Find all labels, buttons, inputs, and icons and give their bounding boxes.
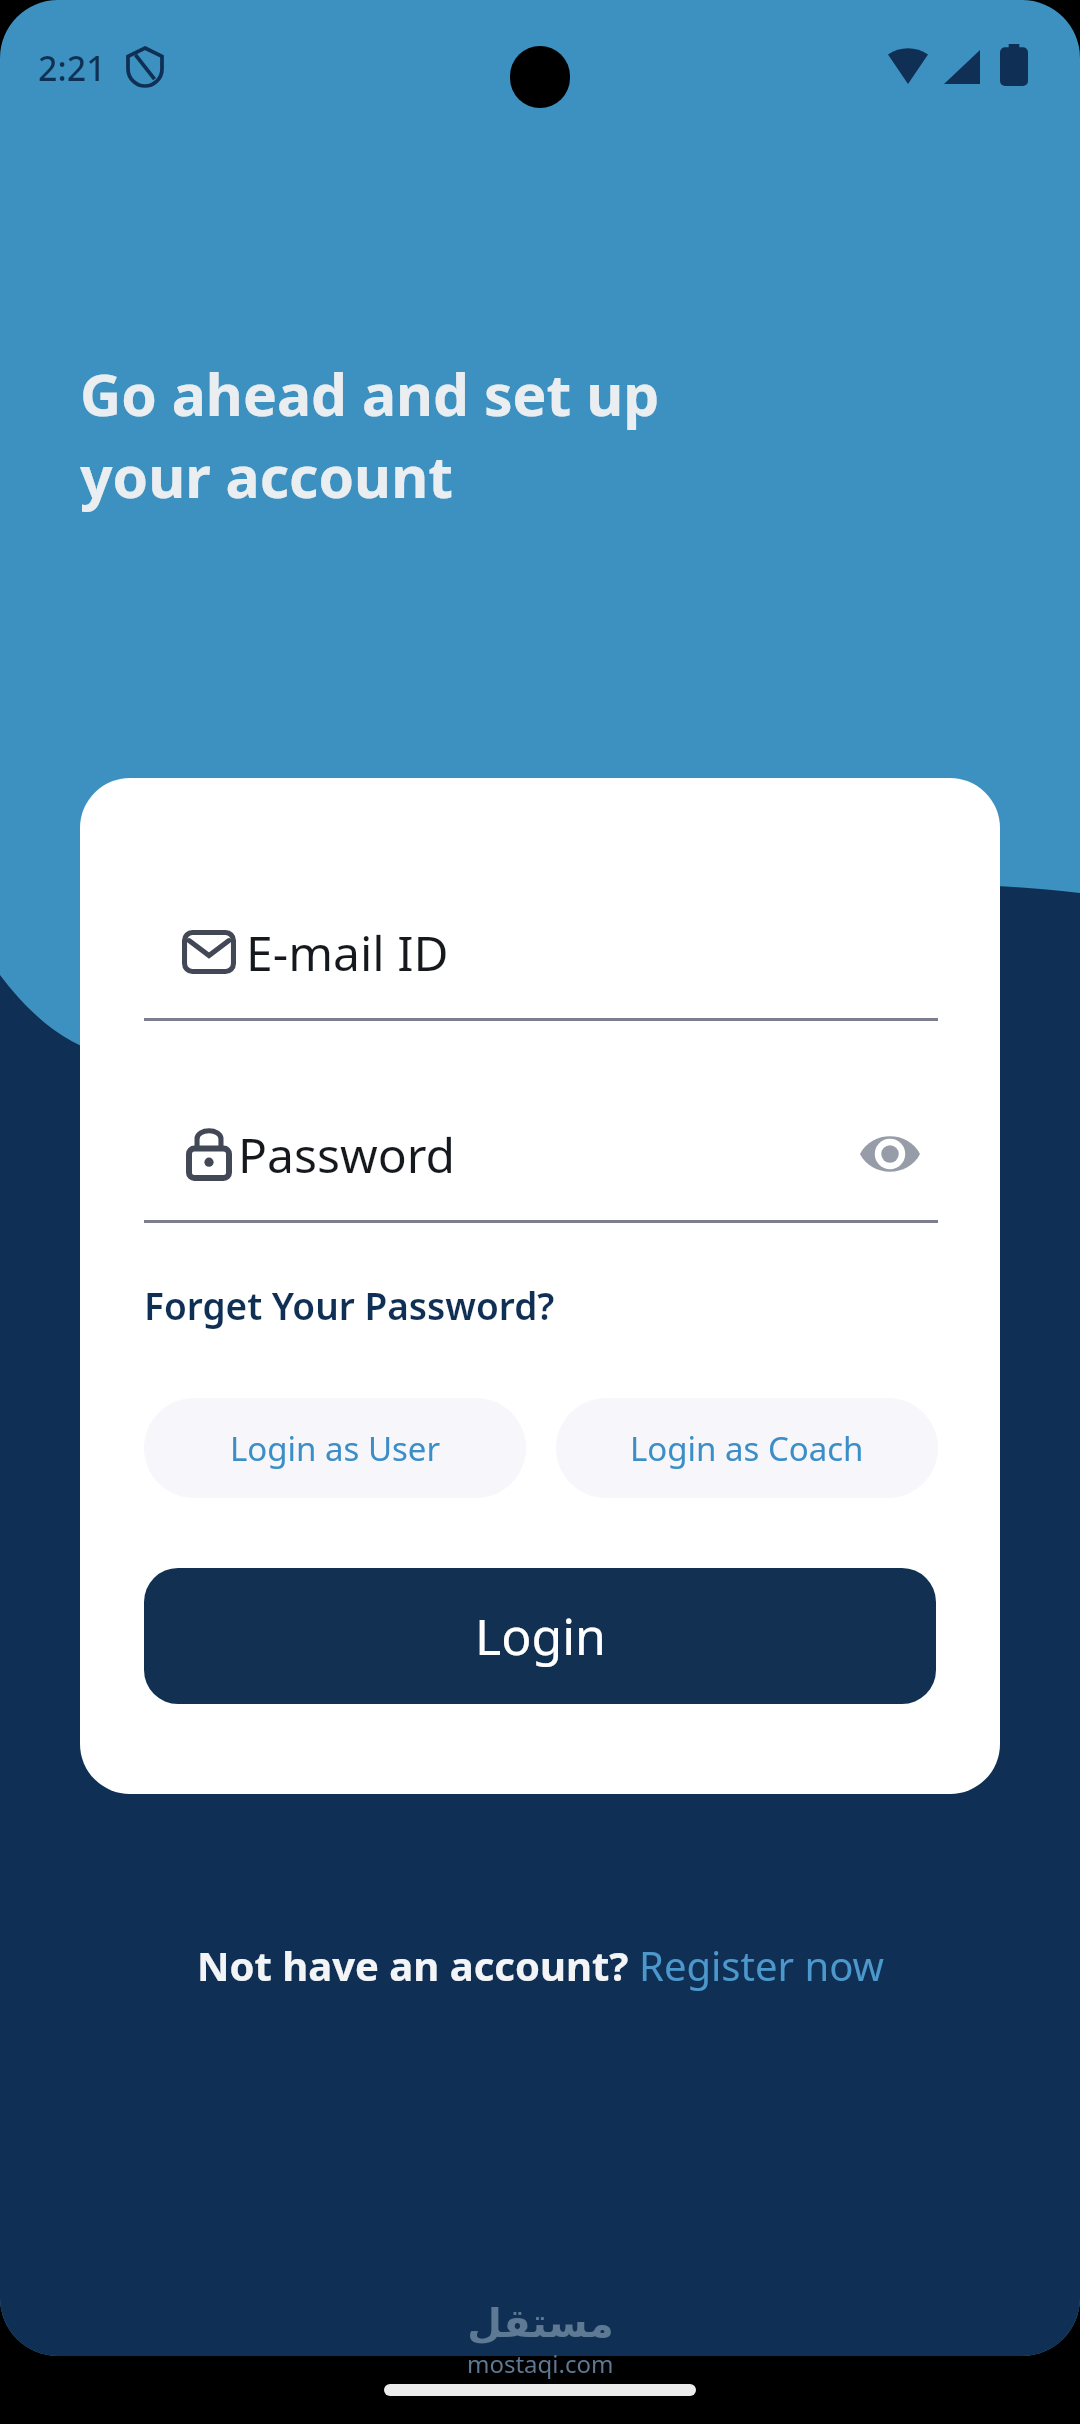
staticText: Go ahead and set up your account (80, 355, 660, 515)
button[interactable]: Register now (639, 1938, 884, 1992)
staticText: Forget Your Password? (144, 1280, 555, 1330)
staticText: E-mail ID (246, 920, 449, 985)
staticText: 2:21 (38, 45, 106, 91)
staticText: Register now (639, 1938, 884, 1992)
staticText: Password (238, 1122, 456, 1187)
staticText: Login as Coach (630, 1426, 864, 1471)
button[interactable]: Login as User (144, 1398, 526, 1498)
staticText: Not have an account? (197, 1938, 639, 1992)
button[interactable]: Password (144, 1098, 938, 1210)
button[interactable]: Show password (842, 1106, 938, 1202)
staticText: Login as User (230, 1426, 441, 1471)
staticText: مستقل (467, 2300, 614, 2347)
staticText: mostaqi.com (467, 2347, 614, 2380)
button[interactable]: Login (144, 1568, 936, 1704)
staticText: Login (475, 1602, 606, 1670)
button[interactable]: Login as Coach (556, 1398, 938, 1498)
button[interactable]: Forget Your Password? (144, 1280, 555, 1330)
button[interactable]: E-mail ID (144, 896, 938, 1008)
